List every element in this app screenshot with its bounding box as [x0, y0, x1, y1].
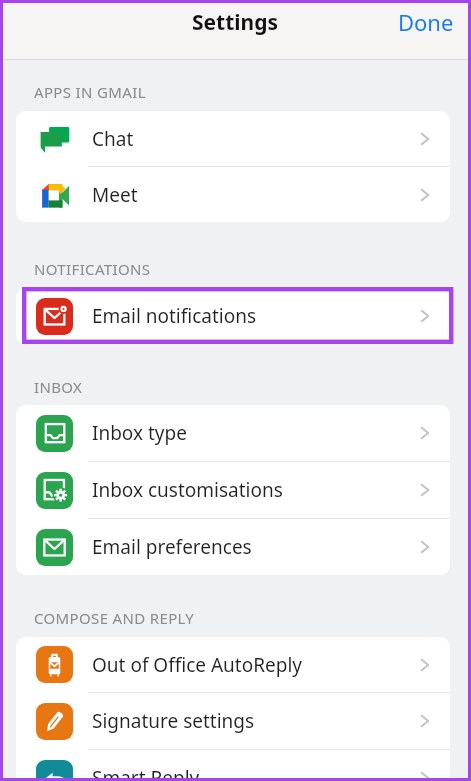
staticText: Settings: [192, 8, 279, 37]
staticText: APPS IN GMAIL: [34, 82, 146, 102]
button[interactable]: Done: [379, 0, 471, 47]
staticText: COMPOSE AND REPLY: [34, 608, 195, 628]
staticText: Done: [398, 7, 454, 37]
button[interactable]: Inbox type: [16, 405, 450, 462]
button[interactable]: Inbox customisations: [16, 462, 450, 519]
button[interactable]: Email preferences: [16, 519, 450, 575]
staticText: INBOX: [34, 377, 83, 397]
button[interactable]: Out of Office AutoReply: [16, 637, 450, 693]
staticText: Smart Reply: [92, 765, 416, 781]
staticText: Email preferences: [92, 534, 416, 560]
staticText: Inbox customisations: [92, 477, 416, 503]
staticText: Inbox type: [92, 420, 416, 446]
staticText: NOTIFICATIONS: [34, 259, 151, 279]
staticText: Meet: [92, 182, 416, 208]
button[interactable]: Meet: [16, 167, 450, 222]
button[interactable]: Email notifications: [16, 288, 450, 344]
staticText: Chat: [92, 126, 416, 152]
button[interactable]: Smart Reply: [16, 750, 450, 781]
button[interactable]: Signature settings: [16, 693, 450, 750]
staticText: Email notifications: [92, 303, 416, 329]
staticText: Signature settings: [92, 708, 416, 734]
button[interactable]: Chat: [16, 111, 450, 167]
staticText: Out of Office AutoReply: [92, 652, 416, 678]
